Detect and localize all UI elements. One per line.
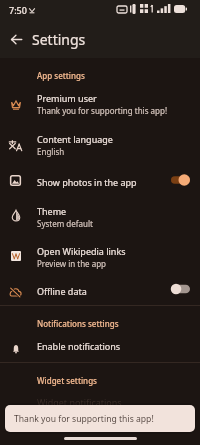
button[interactable]: Enable notifications [0, 331, 200, 357]
staticText: System default [37, 218, 93, 229]
staticText: Show photos in the app [37, 176, 137, 188]
button[interactable]: Toggle on [168, 172, 192, 188]
staticText: Open Wikipedia links [37, 245, 126, 257]
button[interactable]: Premium user [0, 83, 200, 117]
staticText: Widget notifications [37, 396, 122, 408]
button[interactable]: Offline data [0, 276, 200, 302]
staticText: Theme [37, 205, 67, 217]
button[interactable]: Toggle off [168, 281, 192, 297]
button[interactable]: Theme [0, 196, 200, 230]
staticText: Content language [37, 133, 113, 145]
staticText: Widget settings [37, 375, 97, 386]
staticText: App settings [37, 70, 85, 81]
staticText: Preview in the app [37, 258, 107, 269]
button[interactable]: Open Wikipedia links [0, 236, 200, 270]
staticText: 7:50 [9, 4, 27, 16]
staticText: Notifications settings [37, 318, 119, 329]
button[interactable]: Back [3, 26, 30, 53]
staticText: Offline data [37, 285, 87, 297]
button[interactable]: Content language [0, 124, 200, 158]
staticText: English [37, 146, 65, 157]
staticText: Enable notifications [37, 340, 121, 352]
staticText: Thank you for supporting this app! [37, 105, 168, 116]
staticText: Settings [32, 30, 86, 49]
button[interactable]: Thank you for supporting this app! [5, 405, 195, 432]
staticText: Thank you for supporting this app! [14, 413, 154, 425]
button[interactable]: Show photos in the app [0, 167, 200, 193]
staticText: Premium user [37, 92, 97, 104]
